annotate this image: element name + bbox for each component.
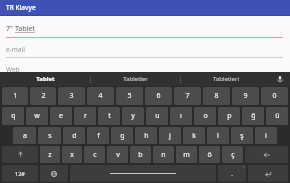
button[interactable]: m (176, 146, 197, 163)
button[interactable]: 2 (30, 87, 56, 105)
button[interactable]: 1 (2, 87, 28, 105)
button[interactable]: Backspace (245, 146, 288, 163)
staticText: ö (207, 150, 212, 160)
button[interactable]: b (130, 146, 151, 163)
button[interactable]: r (74, 107, 96, 125)
staticText: e-mail (6, 45, 25, 54)
staticText: . (21, 107, 23, 112)
button[interactable]: a (13, 127, 36, 144)
staticText: . (57, 146, 59, 151)
button[interactable]: z (40, 146, 60, 163)
staticText: . (237, 107, 239, 112)
button[interactable]: q (2, 107, 24, 125)
button[interactable]: c (84, 146, 105, 163)
button[interactable]: j (159, 127, 181, 144)
button[interactable]: 12# (2, 165, 38, 182)
staticText: Tabletleri (213, 75, 239, 83)
staticText: . (58, 127, 60, 132)
staticText: . (178, 127, 180, 132)
staticText: j (169, 131, 171, 141)
staticText: Tablet (15, 24, 35, 34)
button[interactable]: Tabletleri (181, 72, 270, 86)
button[interactable]: 8 (203, 87, 230, 105)
button[interactable]: ç (222, 146, 243, 163)
button[interactable]: l (207, 127, 229, 144)
staticText: ı (180, 111, 182, 121)
staticText: . (106, 127, 108, 132)
staticText: . (102, 146, 104, 151)
staticText: . (69, 107, 71, 112)
button[interactable]: 3 (58, 87, 85, 105)
staticText: z (48, 150, 52, 160)
staticText: v (116, 150, 120, 160)
staticText: ü (275, 111, 280, 121)
staticText: . (231, 170, 233, 178)
button[interactable]: 7 (174, 87, 201, 105)
button[interactable]: k (183, 127, 205, 144)
button[interactable]: d (63, 127, 85, 144)
button[interactable]: 7" (6, 24, 283, 38)
staticText: 3 (69, 91, 74, 101)
button[interactable]: s (38, 127, 61, 144)
staticText: . (165, 107, 167, 112)
staticText: p (227, 111, 232, 121)
staticText: Web (6, 65, 20, 72)
button[interactable]: Tablet (0, 72, 90, 86)
button[interactable]: Voice input (270, 72, 290, 86)
button[interactable]: 9 (232, 87, 259, 105)
staticText: . (240, 146, 242, 151)
staticText: g (120, 131, 125, 141)
staticText: Tablet (36, 75, 55, 83)
staticText: . (79, 146, 81, 151)
button[interactable]: y (122, 107, 144, 125)
button[interactable]: ü (266, 107, 288, 125)
staticText: 7 (185, 91, 190, 101)
button[interactable]: g (111, 127, 133, 144)
button[interactable]: Space (70, 165, 216, 182)
button[interactable]: Tabletler (91, 72, 180, 86)
staticText: . (141, 107, 143, 112)
staticText: . (250, 127, 252, 132)
button[interactable]: e-mail (6, 45, 283, 58)
button[interactable]: f (87, 127, 109, 144)
staticText: l (217, 131, 219, 141)
button[interactable]: Enter (248, 165, 288, 182)
button[interactable]: Emoji (40, 165, 68, 182)
button[interactable]: h (135, 127, 157, 144)
button[interactable]: ş (231, 127, 253, 144)
button[interactable]: u (146, 107, 168, 125)
button[interactable]: ı (170, 107, 192, 125)
staticText: u (155, 111, 160, 121)
button[interactable]: x (62, 146, 82, 163)
button[interactable]: Web (6, 65, 283, 72)
button[interactable]: . (218, 165, 246, 182)
staticText: . (194, 146, 196, 151)
staticText: s (48, 131, 52, 141)
staticText: a (23, 131, 27, 141)
button[interactable]: n (153, 146, 174, 163)
button[interactable]: 4 (87, 87, 114, 105)
staticText: q (11, 111, 16, 121)
staticText: . (285, 107, 287, 112)
button[interactable]: 5 (116, 87, 143, 105)
button[interactable]: p (218, 107, 240, 125)
button[interactable]: Shift (2, 146, 38, 163)
button[interactable]: t (98, 107, 120, 125)
staticText: . (154, 127, 156, 132)
staticText: 6 (156, 91, 161, 101)
staticText: w (34, 111, 40, 121)
button[interactable]: i (255, 127, 277, 144)
button[interactable]: w (26, 107, 48, 125)
button[interactable]: o (194, 107, 216, 125)
button[interactable]: v (107, 146, 128, 163)
staticText: x (70, 150, 74, 160)
button[interactable]: e (50, 107, 72, 125)
staticText: 7" (6, 24, 15, 34)
staticText: . (274, 127, 276, 132)
staticText: . (93, 107, 95, 112)
staticText: ç (231, 150, 235, 160)
button[interactable]: 0 (261, 87, 288, 105)
button[interactable]: 6 (145, 87, 172, 105)
button[interactable]: ğ (242, 107, 264, 125)
button[interactable]: ö (199, 146, 220, 163)
